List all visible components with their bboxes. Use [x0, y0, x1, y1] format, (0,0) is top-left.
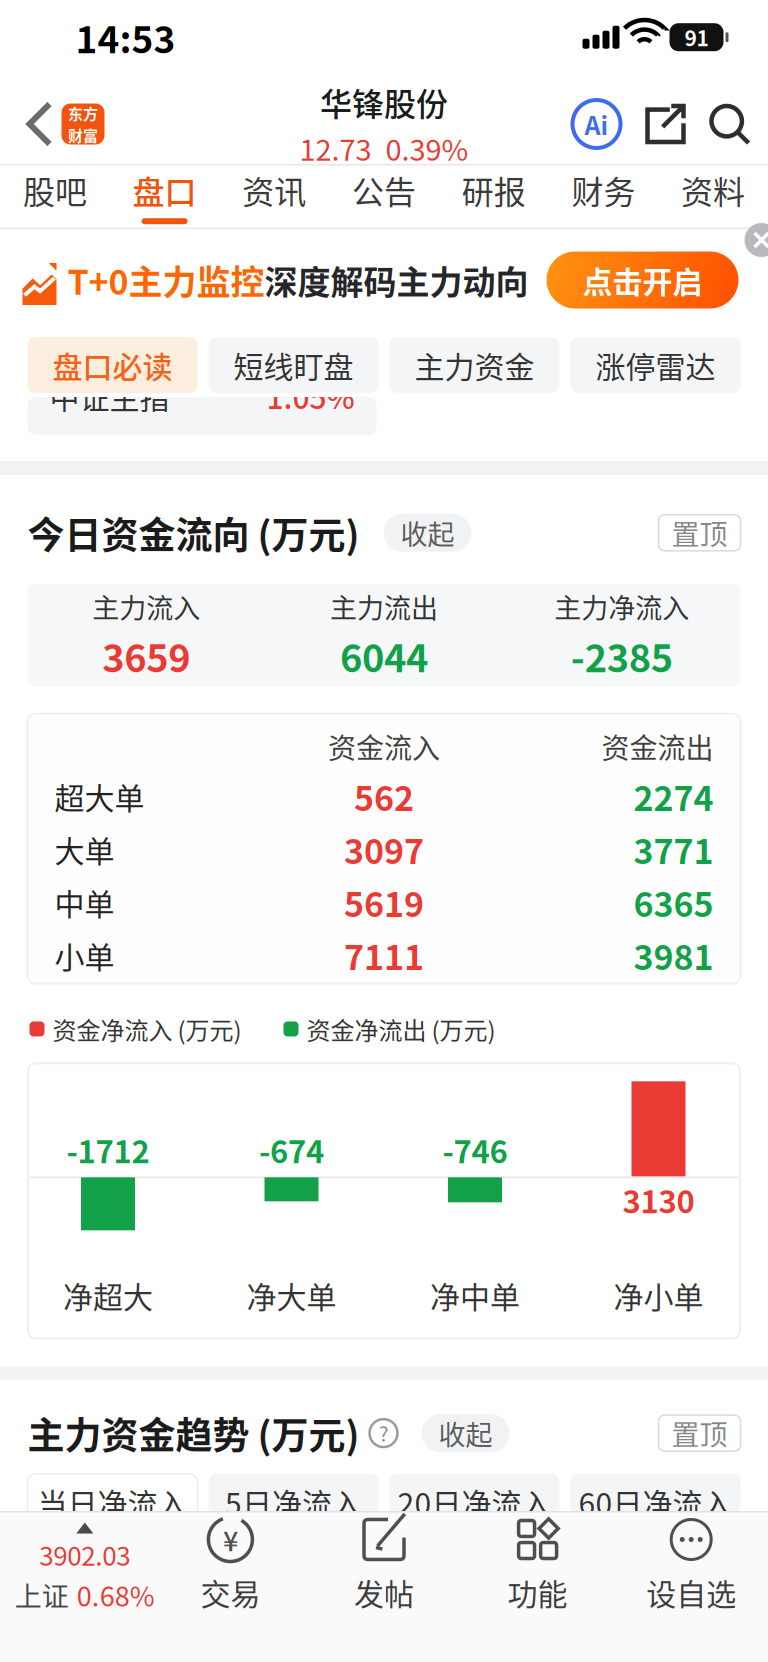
button[interactable]: 功能	[461, 1516, 614, 1614]
staticText: 公告	[352, 167, 416, 213]
staticText: T+0主力监控	[67, 255, 264, 305]
button[interactable]: 搜索	[683, 105, 768, 143]
staticText: 盘口	[133, 167, 197, 213]
staticText: 净小单	[613, 1273, 703, 1317]
button[interactable]: 收起	[421, 1414, 509, 1452]
staticText: 3771	[633, 824, 713, 874]
button[interactable]: 主力资金	[389, 337, 559, 393]
button[interactable]: 盘口必读	[27, 337, 197, 393]
button[interactable]: 东方财富	[61, 102, 104, 146]
staticText: 12.73	[299, 127, 371, 169]
button[interactable]: 股吧	[0, 165, 110, 227]
staticText: 6044	[340, 628, 428, 683]
staticText: 2274	[633, 771, 713, 821]
button[interactable]: 分享	[620, 106, 683, 142]
staticText: 超大单	[54, 774, 144, 818]
button[interactable]: 涨停雷达	[570, 337, 740, 393]
staticText: 主力流入	[92, 587, 200, 626]
staticText: 0.39%	[385, 127, 468, 169]
staticText: 3097	[344, 824, 424, 874]
button[interactable]: 点击开启	[546, 251, 738, 308]
staticText: 60日净流入	[578, 1480, 732, 1524]
staticText: 上证	[15, 1575, 69, 1614]
staticText: 资金流出	[601, 726, 713, 767]
staticText: 主力资金	[414, 343, 534, 387]
staticText: 净大单	[246, 1273, 336, 1317]
staticText: 3981	[633, 930, 713, 980]
button[interactable]: 设自选	[614, 1516, 768, 1614]
staticText: 置顶	[671, 512, 727, 553]
staticText: 点击开启	[582, 258, 702, 302]
staticText: 20日净流入	[397, 1480, 551, 1524]
staticText: 收起	[438, 1414, 492, 1453]
staticText: 14:53	[75, 10, 175, 64]
staticText: 盘口必读	[52, 343, 172, 387]
button[interactable]: 研报	[439, 165, 548, 227]
staticText: 今日资金流向 (万元)	[27, 506, 359, 560]
staticText: 当日净流入	[37, 1480, 187, 1524]
staticText: 0.68%	[77, 1575, 155, 1614]
staticText: 3130	[622, 1177, 694, 1222]
staticText: 中证主指	[49, 374, 169, 418]
button[interactable]: 短线盯盘	[208, 337, 378, 393]
staticText: 5日净流入	[225, 1480, 362, 1524]
button[interactable]: 5日净流入	[208, 1474, 378, 1530]
button[interactable]: 资料	[658, 165, 768, 227]
staticText: 3902.03	[39, 1535, 130, 1573]
staticText: 6365	[633, 877, 713, 927]
button[interactable]: ¥	[154, 1516, 307, 1614]
staticText: 562	[354, 771, 414, 821]
staticText: 涨停雷达	[595, 343, 715, 387]
button[interactable]: AI 助手	[572, 100, 620, 148]
staticText: 中单	[54, 880, 114, 924]
button[interactable]: 关闭	[744, 223, 768, 257]
button[interactable]: 发帖	[307, 1516, 461, 1614]
staticText: 3659	[102, 628, 190, 683]
staticText: 交易	[200, 1570, 260, 1614]
staticText: ¥	[223, 1520, 238, 1559]
staticText: 大单	[54, 827, 114, 871]
button[interactable]: Back	[0, 104, 61, 144]
staticText: 短线盯盘	[233, 343, 353, 387]
staticText: 主力资金趋势 (万元)	[27, 1406, 359, 1460]
staticText: 设自选	[646, 1570, 736, 1614]
button[interactable]: 公告	[329, 165, 439, 227]
staticText: 收起	[400, 513, 454, 552]
staticText: 资金净流入 (万元)	[52, 1012, 241, 1046]
staticText: 华锋股份	[320, 79, 448, 125]
button[interactable]: 置顶	[658, 515, 740, 551]
staticText: 置顶	[671, 1413, 727, 1453]
staticText: 1.05%	[266, 374, 354, 418]
button[interactable]: 盘口	[110, 165, 219, 227]
staticText: 研报	[462, 167, 526, 213]
button[interactable]: 当日净流入	[27, 1474, 197, 1530]
staticText: 股吧	[23, 167, 87, 213]
staticText: 5619	[344, 877, 424, 927]
staticText: 资金净流出 (万元)	[306, 1012, 495, 1046]
staticText: 91	[684, 22, 708, 52]
staticText: ?	[379, 1419, 388, 1448]
staticText: 主力流出	[330, 587, 438, 626]
staticText: -2385	[571, 628, 673, 683]
staticText: 财富	[68, 124, 98, 146]
staticText: 7111	[344, 930, 424, 980]
button[interactable]: 收起	[383, 514, 471, 552]
staticText: 深度解码主力动向	[264, 256, 528, 304]
staticText: 净超大	[63, 1273, 153, 1317]
button[interactable]: 3902.03	[0, 1516, 154, 1614]
staticText: Ai	[584, 106, 608, 142]
button[interactable]: 财务	[548, 165, 658, 227]
button[interactable]: 60日净流入	[570, 1474, 740, 1530]
staticText: 功能	[508, 1570, 568, 1614]
button[interactable]: 置顶	[658, 1415, 740, 1451]
button[interactable]: 资讯	[219, 165, 329, 227]
staticText: -746	[442, 1127, 507, 1172]
staticText: 小单	[54, 933, 114, 977]
button[interactable]: 20日净流入	[389, 1474, 559, 1530]
staticText: 东方	[68, 102, 98, 124]
staticText: 财务	[571, 167, 635, 213]
staticText: 发帖	[354, 1570, 414, 1614]
staticText: 资讯	[242, 167, 306, 213]
staticText: 主力净流入	[554, 587, 689, 626]
staticText: 资金流入	[328, 726, 440, 767]
